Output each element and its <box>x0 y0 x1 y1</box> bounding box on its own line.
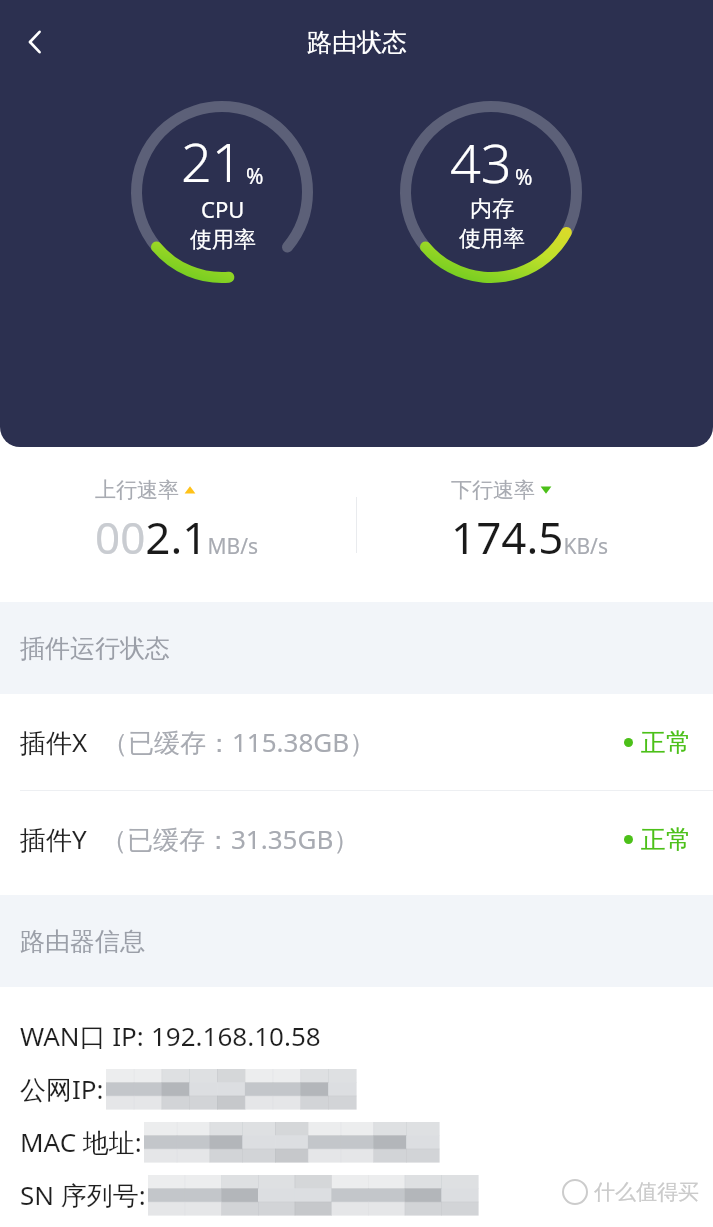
staticText: 174.5KB/s <box>451 507 608 567</box>
button[interactable]: Back <box>8 14 64 70</box>
staticText: WAN口 IP: <box>20 1018 151 1054</box>
staticText: 43 <box>450 125 512 199</box>
button[interactable]: 插件X <box>0 694 713 790</box>
staticText: （已缓存：31.35GB） <box>101 821 360 857</box>
staticText: 使用率 <box>459 225 525 253</box>
staticText: （已缓存：115.38GB） <box>102 724 376 760</box>
staticText: 什么值得买 <box>594 1179 699 1205</box>
staticText: CPU <box>201 194 245 224</box>
staticText: 路由器信息 <box>20 926 145 957</box>
staticText: 正常 <box>641 824 691 855</box>
staticText: 公网IP: <box>20 1071 104 1107</box>
staticText: SN 序列号: <box>20 1177 146 1213</box>
staticText: 上行速率 <box>95 477 179 503</box>
staticText: % <box>515 163 533 192</box>
staticText: 插件运行状态 <box>20 633 170 664</box>
staticText: 192.168.10.58 <box>151 1018 321 1053</box>
staticText: 插件Y <box>20 821 87 857</box>
staticText: 21 <box>181 124 243 198</box>
staticText: % <box>246 162 264 191</box>
staticText: MAC 地址: <box>20 1124 142 1160</box>
staticText: 内存 <box>470 195 514 223</box>
staticText: 002.1MB/s <box>95 507 259 567</box>
staticText: 路由状态 <box>307 27 407 58</box>
staticText: 使用率 <box>190 226 256 254</box>
staticText: 正常 <box>641 727 691 758</box>
staticText: 插件X <box>20 724 88 760</box>
button[interactable]: 插件Y <box>0 791 713 887</box>
staticText: 下行速率 <box>451 477 535 503</box>
